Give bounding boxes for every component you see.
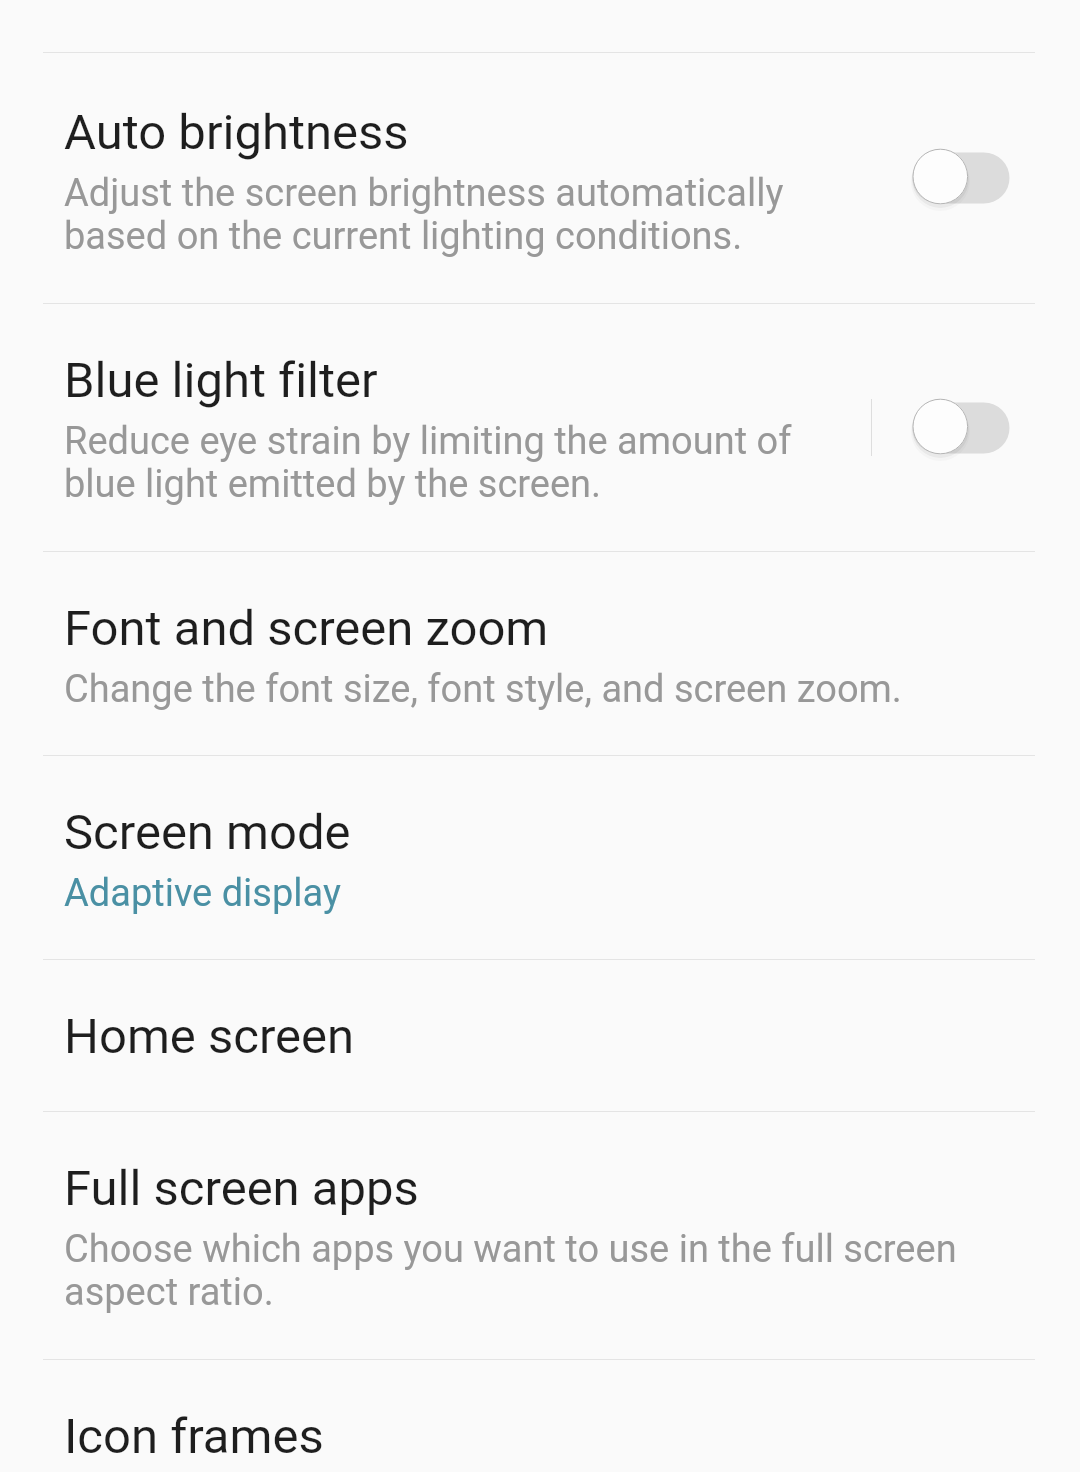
button[interactable]: Icon frames: [0, 1360, 1080, 1472]
button[interactable]: Auto brightness: [0, 53, 1080, 303]
staticText: Font and screen zoom: [64, 600, 549, 657]
staticText: Adaptive display: [64, 871, 341, 916]
staticText: Home screen: [64, 1008, 355, 1065]
staticText: Blue light filter: [64, 352, 378, 409]
staticText: Icon frames: [64, 1408, 324, 1465]
button[interactable]: Blue light filter: [0, 304, 1080, 551]
staticText: Reduce eye strain by limiting the amount…: [64, 419, 792, 506]
button[interactable]: Font and screen zoom: [0, 552, 1080, 755]
button[interactable]: Full screen apps: [0, 1112, 1080, 1359]
staticText: Adjust the screen brightness automatical…: [64, 171, 784, 258]
button[interactable]: Screen mode: [0, 756, 1080, 959]
staticText: Change the font size, font style, and sc…: [64, 667, 902, 712]
staticText: Full screen apps: [64, 1160, 419, 1217]
button[interactable]: Blue light filter: [891, 376, 1031, 480]
button[interactable]: Home screen: [0, 960, 1080, 1111]
staticText: Choose which apps you want to use in the…: [64, 1227, 957, 1314]
button[interactable]: Auto brightness: [891, 126, 1031, 230]
staticText: Auto brightness: [64, 104, 409, 161]
staticText: Screen mode: [64, 804, 351, 861]
